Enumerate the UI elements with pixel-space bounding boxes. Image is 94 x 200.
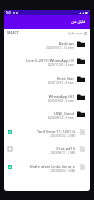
staticText: WhatsApp HD [48,94,74,99]
staticText: 2023/08/14 - 9 item [47,116,74,120]
staticText: Tarif Setar 11-1401 G [37,129,75,134]
staticText: 2023/11/02 - 4 item [47,63,74,67]
staticText: 2023/09/30 - 3 item [47,99,74,103]
staticText: 2024/01/12 - 12 item [46,46,74,50]
button[interactable]: Select item [4,123,90,141]
button[interactable]: SELECT [7,30,19,35]
staticText: 2023/07/22 - 2 MB [50,134,75,138]
button[interactable]: WhatsApp HD [4,88,90,106]
button[interactable]: LINE_Good [4,105,90,123]
staticText: SELECT [7,30,19,35]
staticText: Rock Star [56,76,74,81]
staticText: LINE_Good [53,111,74,116]
staticText: 2023/05/02 - 5 MB [50,169,75,173]
other: Select item [8,130,12,134]
staticText: 01az.pdf 0 [56,146,75,151]
other: Select item [8,165,12,169]
button[interactable]: مرتب سازی [68,31,87,35]
button[interactable]: Rock Star [4,70,90,88]
button[interactable]: Select item [4,158,90,176]
button[interactable]: Select item [4,140,90,158]
staticText: 9:41 [6,11,12,15]
button[interactable]: Backups [4,35,90,53]
staticText: 2023/06/11 - 1 MB [50,151,75,155]
staticText: فایل من [71,19,86,25]
staticText: مرتب سازی [68,31,83,35]
staticText: Line-6-2019 (WhatsApp) Vi [26,58,74,63]
button[interactable]: Line-6-2019 (WhatsApp) Vi [4,52,90,70]
other: Select item [8,147,12,151]
staticText: 2023/10/19 - 8 item [47,81,74,85]
staticText: Backups [58,41,74,46]
staticText: Shahr afzar Links list ar e [29,164,75,169]
